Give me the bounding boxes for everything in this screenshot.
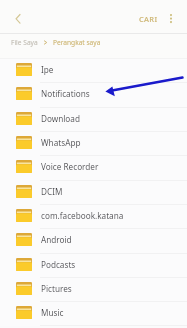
button[interactable]: WhatsApp [0, 132, 187, 156]
button[interactable]: Android [0, 229, 187, 254]
button[interactable]: Music [0, 302, 187, 326]
button[interactable]: CARI [136, 2, 161, 36]
staticText: WhatsApp [41, 137, 81, 148]
staticText: Podcasts [41, 259, 76, 270]
staticText: Music [41, 307, 64, 318]
staticText: Perangkat saya [53, 38, 101, 47]
button[interactable]: Back [3, 2, 33, 32]
staticText: Android [41, 234, 72, 245]
button[interactable]: More options [161, 2, 181, 36]
staticText: DCIM [41, 186, 63, 197]
button[interactable]: Pictures [0, 278, 187, 302]
button[interactable]: Ipe [0, 59, 187, 83]
button[interactable]: DCIM [0, 181, 187, 205]
button[interactable]: Notifications [0, 83, 187, 108]
staticText: File Saya [11, 38, 38, 47]
button[interactable]: Voice Recorder [0, 156, 187, 181]
staticText: Voice Recorder [41, 161, 99, 172]
button[interactable]: com.facebook.katana [0, 205, 187, 229]
button[interactable]: Podcasts [0, 254, 187, 278]
staticText: Download [41, 113, 80, 124]
button[interactable]: Perangkat saya [53, 38, 101, 47]
staticText: Pictures [41, 283, 72, 294]
staticText: Notifications [41, 88, 90, 99]
staticText: CARI [139, 14, 158, 24]
staticText: com.facebook.katana [41, 210, 124, 221]
button[interactable]: Download [0, 108, 187, 132]
button[interactable]: File Saya [11, 38, 38, 47]
staticText: Ipe [41, 64, 54, 75]
